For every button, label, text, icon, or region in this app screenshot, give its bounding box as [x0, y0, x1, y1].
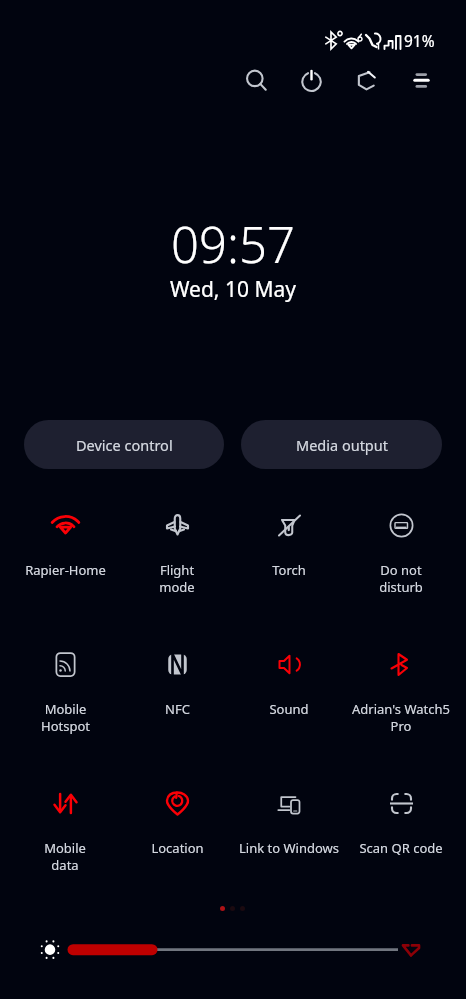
button[interactable]: Mobile data	[9, 783, 121, 922]
staticText: Link to Windows	[239, 839, 339, 857]
staticText: Location	[151, 839, 204, 857]
staticText: Adrian's Watch5 Pro	[352, 700, 450, 735]
staticText: Scan QR code	[359, 839, 443, 857]
button[interactable]: Do not disturb	[345, 505, 457, 644]
staticText: 91%	[404, 30, 435, 51]
staticText: Device control	[76, 435, 173, 455]
button[interactable]: Adrian's Watch5 Pro	[345, 644, 457, 783]
staticText: Flight mode	[159, 561, 195, 596]
button[interactable]: Media output	[241, 420, 442, 469]
staticText: Rapier-Home	[25, 561, 106, 579]
button[interactable]: Rapier-Home	[9, 505, 121, 644]
button[interactable]: Sound	[233, 644, 345, 783]
button[interactable]: Search	[229, 53, 284, 108]
staticText: Mobile data	[44, 839, 86, 874]
staticText: Media output	[296, 435, 388, 455]
button[interactable]: Location	[121, 783, 233, 922]
button[interactable]: Device control	[24, 420, 224, 469]
button[interactable]: Flight mode	[121, 505, 233, 644]
button[interactable]: Link to Windows	[233, 783, 345, 922]
button[interactable]: Auto rotate	[339, 53, 394, 108]
button[interactable]: Mobile Hotspot	[9, 644, 121, 783]
staticText: Do not disturb	[379, 561, 423, 596]
button[interactable]: Power	[284, 53, 339, 108]
button[interactable]: Scan QR code	[345, 783, 457, 922]
button[interactable]: NFC	[121, 644, 233, 783]
staticText: Wed, 10 May	[170, 275, 296, 304]
staticText: Mobile Hotspot	[41, 700, 90, 735]
button[interactable]: Torch	[233, 505, 345, 644]
staticText: 09:57	[171, 211, 295, 278]
button[interactable]: Quick settings menu	[394, 53, 449, 108]
staticText: NFC	[165, 700, 190, 718]
staticText: Sound	[269, 700, 309, 718]
staticText: Torch	[272, 561, 306, 579]
